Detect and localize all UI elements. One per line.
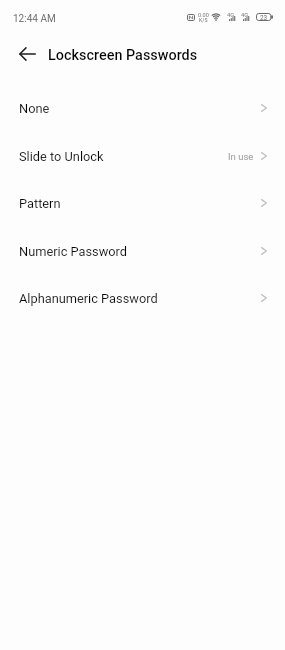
staticText: 12:44 AM [13,13,56,25]
staticText: None [19,101,50,116]
staticText: 0.00 [198,12,209,19]
button[interactable]: None [0,84,285,132]
staticText: 4G [241,12,249,19]
staticText: Numeric Password [19,244,128,259]
button[interactable]: Back [10,36,45,71]
staticText: Alphanumeric Password [19,291,158,306]
staticText: K/S [199,17,208,23]
staticText: In use [228,151,254,162]
staticText: 23 [260,14,268,22]
staticText: Slide to Unlock [19,149,104,164]
button[interactable]: Pattern [0,179,285,227]
button[interactable]: Numeric Password [0,227,285,275]
staticText: Lockscreen Passwords [48,47,198,64]
staticText: Pattern [19,196,61,211]
button[interactable]: Alphanumeric Password [0,274,285,322]
staticText: 4G [227,12,235,19]
button[interactable]: Slide to Unlock [0,132,285,180]
